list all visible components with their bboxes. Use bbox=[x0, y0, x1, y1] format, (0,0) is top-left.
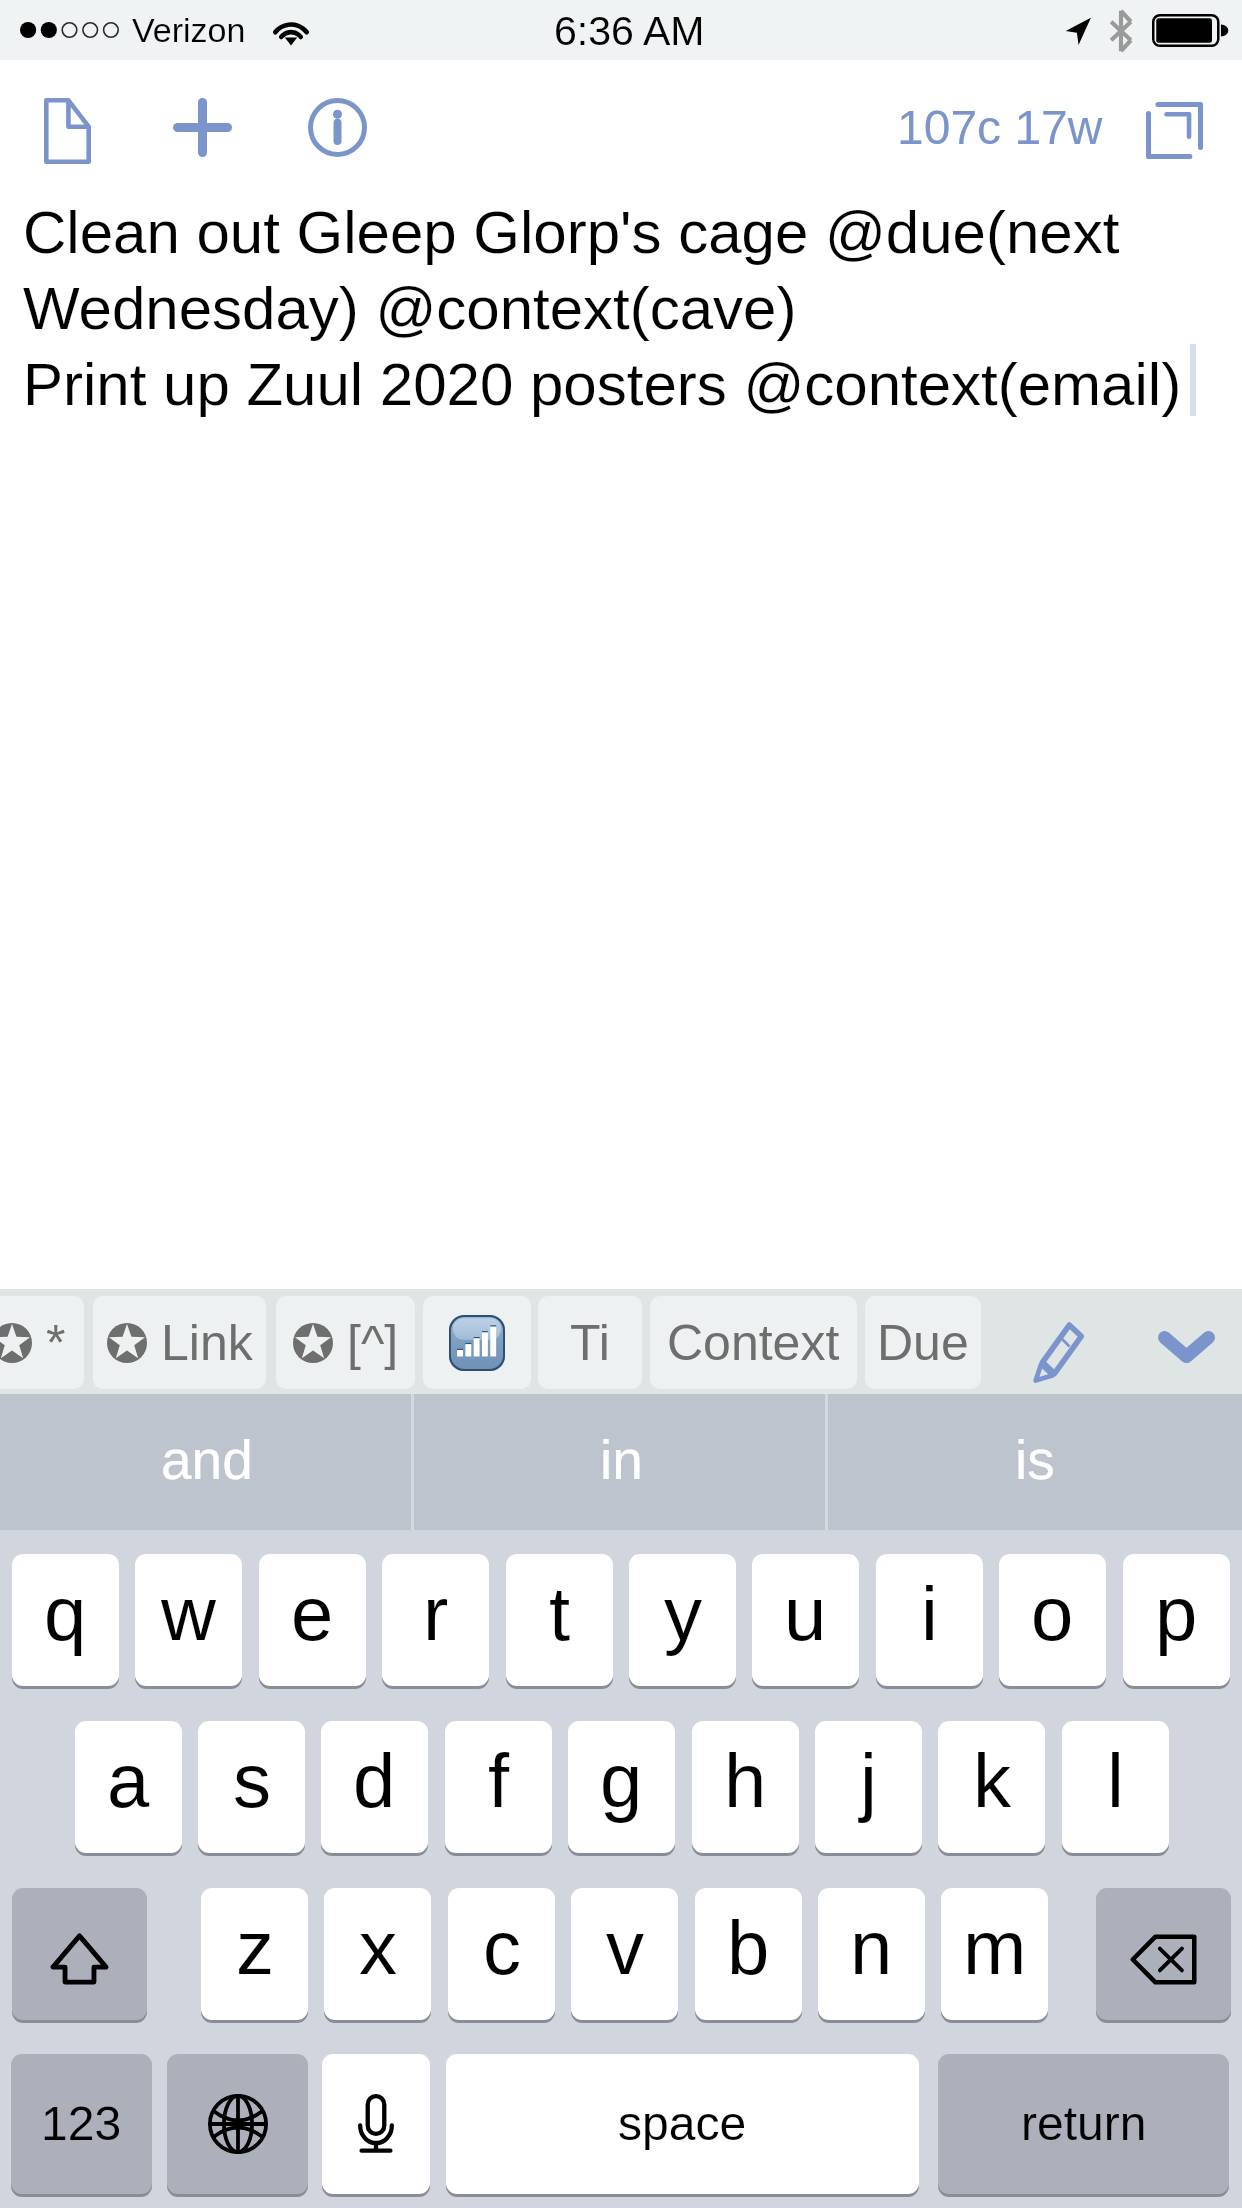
staticText: f bbox=[488, 1738, 510, 1823]
staticText: x bbox=[359, 1905, 397, 1990]
staticText: o bbox=[1031, 1571, 1074, 1656]
button[interactable]: Edit bbox=[1000, 1289, 1118, 1394]
button[interactable]: k bbox=[938, 1721, 1045, 1853]
staticText: n bbox=[850, 1905, 893, 1990]
button[interactable]: and bbox=[0, 1394, 414, 1530]
button[interactable]: Link bbox=[93, 1296, 266, 1389]
button[interactable]: in bbox=[414, 1394, 828, 1530]
staticText: space bbox=[618, 2097, 747, 2151]
button[interactable]: * bbox=[0, 1296, 84, 1389]
staticText: r bbox=[423, 1571, 449, 1656]
button[interactable]: h bbox=[692, 1721, 799, 1853]
staticText: b bbox=[727, 1905, 770, 1990]
button[interactable]: 123 bbox=[11, 2054, 152, 2194]
button[interactable]: x bbox=[324, 1888, 431, 2020]
button[interactable]: o bbox=[999, 1554, 1106, 1686]
staticText: return bbox=[1021, 2097, 1147, 2151]
button[interactable]: Context bbox=[650, 1296, 857, 1389]
button[interactable]: New document bbox=[14, 73, 121, 188]
button[interactable]: g bbox=[568, 1721, 675, 1853]
button[interactable]: r bbox=[382, 1554, 489, 1686]
staticText: m bbox=[963, 1905, 1027, 1990]
button[interactable]: f bbox=[445, 1721, 552, 1853]
button[interactable]: v bbox=[571, 1888, 678, 2020]
button[interactable]: Copy bbox=[1119, 78, 1229, 183]
staticText: 6:36 AM bbox=[554, 8, 705, 54]
button[interactable] bbox=[1096, 1888, 1231, 2020]
button[interactable]: l bbox=[1062, 1721, 1169, 1853]
staticText: a bbox=[107, 1738, 150, 1823]
staticText: p bbox=[1155, 1571, 1198, 1656]
staticText: q bbox=[44, 1571, 87, 1656]
staticText: and bbox=[161, 1429, 253, 1490]
staticText: s bbox=[233, 1738, 271, 1823]
staticText: d bbox=[353, 1738, 396, 1823]
button[interactable]: Due bbox=[865, 1296, 981, 1389]
staticText: h bbox=[724, 1738, 767, 1823]
staticText: w bbox=[161, 1571, 216, 1656]
staticText: * bbox=[46, 1315, 66, 1371]
staticText: t bbox=[549, 1571, 571, 1656]
button[interactable] bbox=[423, 1296, 531, 1389]
button[interactable]: y bbox=[629, 1554, 736, 1686]
staticText: y bbox=[664, 1571, 702, 1656]
staticText: i bbox=[921, 1571, 938, 1656]
button[interactable]: Ti bbox=[538, 1296, 642, 1389]
button[interactable]: Info bbox=[284, 70, 391, 185]
button[interactable]: return bbox=[938, 2054, 1229, 2194]
staticText: j bbox=[860, 1738, 877, 1823]
button[interactable]: m bbox=[941, 1888, 1048, 2020]
button[interactable]: is bbox=[828, 1394, 1242, 1530]
staticText: [^] bbox=[347, 1315, 399, 1371]
staticText: Due bbox=[877, 1315, 969, 1371]
button[interactable]: i bbox=[876, 1554, 983, 1686]
button[interactable]: j bbox=[815, 1721, 922, 1853]
staticText: 107c 17w bbox=[897, 101, 1103, 155]
staticText: in bbox=[600, 1429, 643, 1490]
button[interactable] bbox=[12, 1888, 147, 2020]
button[interactable] bbox=[167, 2054, 308, 2194]
button[interactable]: u bbox=[752, 1554, 859, 1686]
staticText: z bbox=[236, 1905, 274, 1990]
button[interactable]: Add bbox=[149, 70, 256, 185]
staticText: c bbox=[483, 1905, 521, 1990]
staticText: Link bbox=[161, 1315, 253, 1371]
button[interactable]: Hide keyboard bbox=[1130, 1289, 1242, 1394]
button[interactable]: c bbox=[448, 1888, 555, 2020]
staticText: g bbox=[600, 1738, 643, 1823]
staticText: 123 bbox=[41, 2097, 122, 2151]
button[interactable]: a bbox=[75, 1721, 182, 1853]
staticText: e bbox=[291, 1571, 334, 1656]
staticText: u bbox=[784, 1571, 827, 1656]
button[interactable] bbox=[322, 2054, 430, 2194]
button[interactable]: p bbox=[1123, 1554, 1230, 1686]
staticText: Clean out Gleep Glorp's cage @due(next W… bbox=[23, 199, 1182, 417]
staticText: Context bbox=[667, 1315, 840, 1371]
staticText: Ti bbox=[570, 1315, 610, 1371]
button[interactable]: d bbox=[321, 1721, 428, 1853]
button[interactable]: w bbox=[135, 1554, 242, 1686]
button[interactable]: z bbox=[201, 1888, 308, 2020]
button[interactable]: n bbox=[818, 1888, 925, 2020]
button[interactable]: space bbox=[446, 2054, 919, 2194]
button[interactable]: t bbox=[506, 1554, 613, 1686]
button[interactable]: q bbox=[12, 1554, 119, 1686]
button[interactable]: s bbox=[198, 1721, 305, 1853]
button[interactable]: e bbox=[259, 1554, 366, 1686]
staticText: is bbox=[1015, 1429, 1055, 1490]
button[interactable]: b bbox=[695, 1888, 802, 2020]
staticText: Verizon bbox=[132, 11, 246, 49]
button[interactable]: [^] bbox=[276, 1296, 415, 1389]
staticText: k bbox=[973, 1738, 1011, 1823]
staticText: v bbox=[606, 1905, 644, 1990]
staticText: l bbox=[1107, 1738, 1124, 1823]
